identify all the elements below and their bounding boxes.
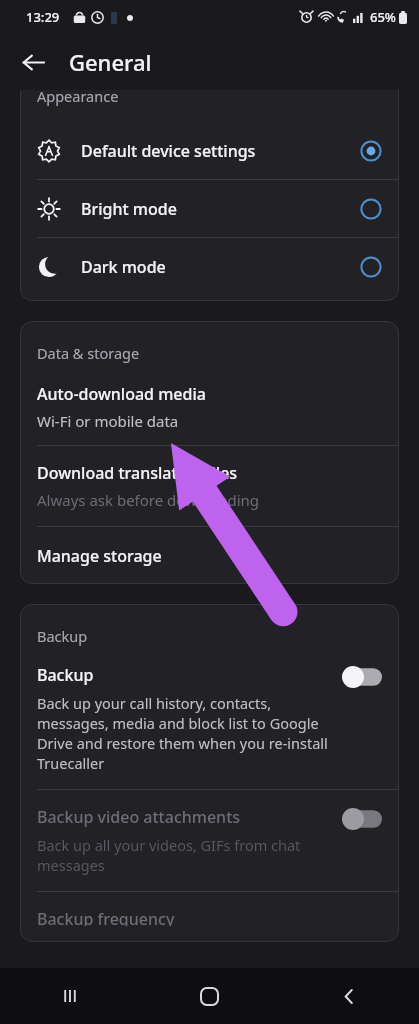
staticText: Default device settings (81, 140, 360, 162)
staticText: Back up your call history, contacts, mes… (37, 693, 330, 773)
button[interactable]: Auto-download media (20, 383, 399, 445)
button[interactable]: Back (279, 968, 419, 1024)
staticText: Bright mode (81, 198, 360, 220)
button[interactable]: Default device settings (20, 122, 399, 179)
button[interactable]: Download translation files (20, 446, 399, 526)
button[interactable]: Home (139, 968, 279, 1024)
button[interactable]: Manage storage (20, 527, 399, 584)
staticText: Backup frequency (37, 908, 175, 926)
staticText: Backup video attachments (37, 806, 241, 828)
button[interactable]: Backup (20, 664, 399, 789)
staticText: Wi-Fi or mobile data (37, 411, 179, 431)
button[interactable]: Backup toggle (342, 666, 382, 688)
staticText: Download translation files (37, 462, 238, 484)
staticText: Back up all your videos, GIFs from chat … (37, 835, 330, 875)
button[interactable]: Back (13, 42, 53, 82)
button[interactable]: Backup frequency (20, 892, 399, 942)
staticText: Always ask before downloading (37, 490, 260, 510)
button[interactable]: Bright mode (20, 180, 399, 237)
button[interactable]: Backup video attachments toggle (342, 808, 382, 830)
staticText: 65% (370, 8, 396, 26)
button[interactable]: Recent apps (0, 968, 139, 1024)
staticText: General (69, 47, 152, 77)
staticText: Backup (37, 664, 94, 686)
staticText: Appearance (37, 90, 119, 106)
staticText: Data & storage (37, 343, 140, 363)
staticText: Manage storage (37, 545, 162, 567)
staticText: Dark mode (81, 256, 360, 278)
button[interactable]: Dark mode (20, 238, 399, 295)
button[interactable]: Backup video attachments (20, 790, 399, 891)
staticText: Backup (37, 626, 88, 646)
staticText: Auto-download media (37, 383, 206, 405)
staticText: 13:29 (26, 8, 60, 26)
